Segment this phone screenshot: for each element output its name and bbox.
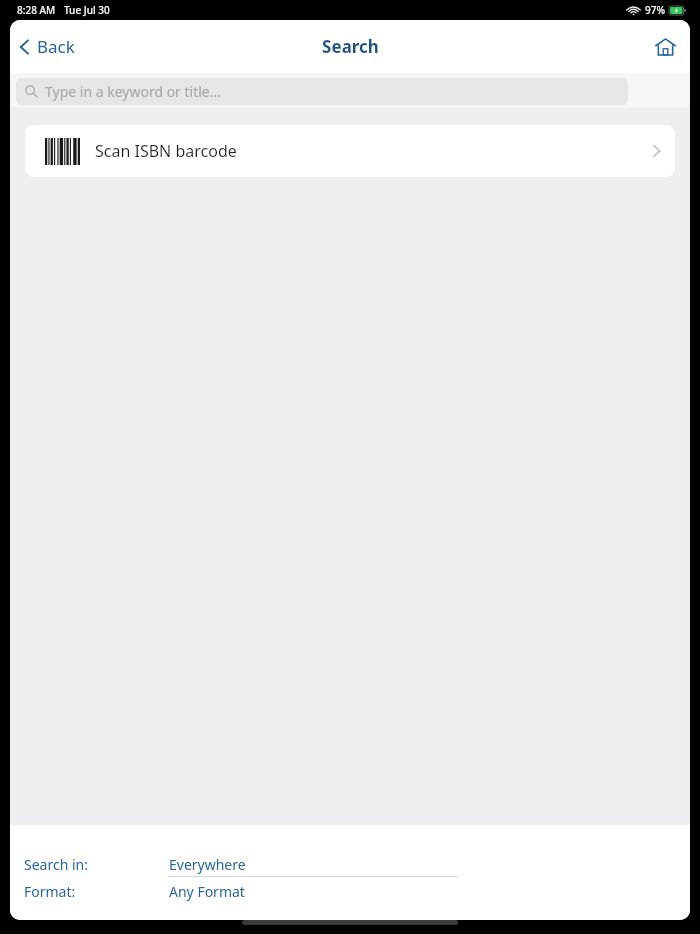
button[interactable]: Search in: — [10, 851, 690, 878]
staticText: Everywhere — [169, 855, 246, 874]
staticText: Any Format — [169, 882, 245, 901]
staticText: Search in: — [24, 855, 88, 874]
button[interactable]: Format: — [10, 878, 690, 905]
staticText: Type in a keyword or title... — [45, 82, 222, 101]
staticText: 97% — [645, 3, 665, 17]
staticText: Search — [322, 35, 379, 58]
button[interactable]: Back — [10, 27, 87, 66]
button[interactable]: Scan ISBN barcode — [25, 125, 675, 177]
staticText: 8:28 AM — [17, 3, 56, 17]
staticText: Scan ISBN barcode — [95, 140, 237, 162]
staticText: Format: — [24, 882, 76, 901]
staticText: Back — [37, 35, 75, 58]
button[interactable]: Type in a keyword or title... — [16, 78, 628, 105]
staticText: Tue Jul 30 — [64, 3, 110, 17]
button[interactable]: Home — [641, 25, 690, 68]
